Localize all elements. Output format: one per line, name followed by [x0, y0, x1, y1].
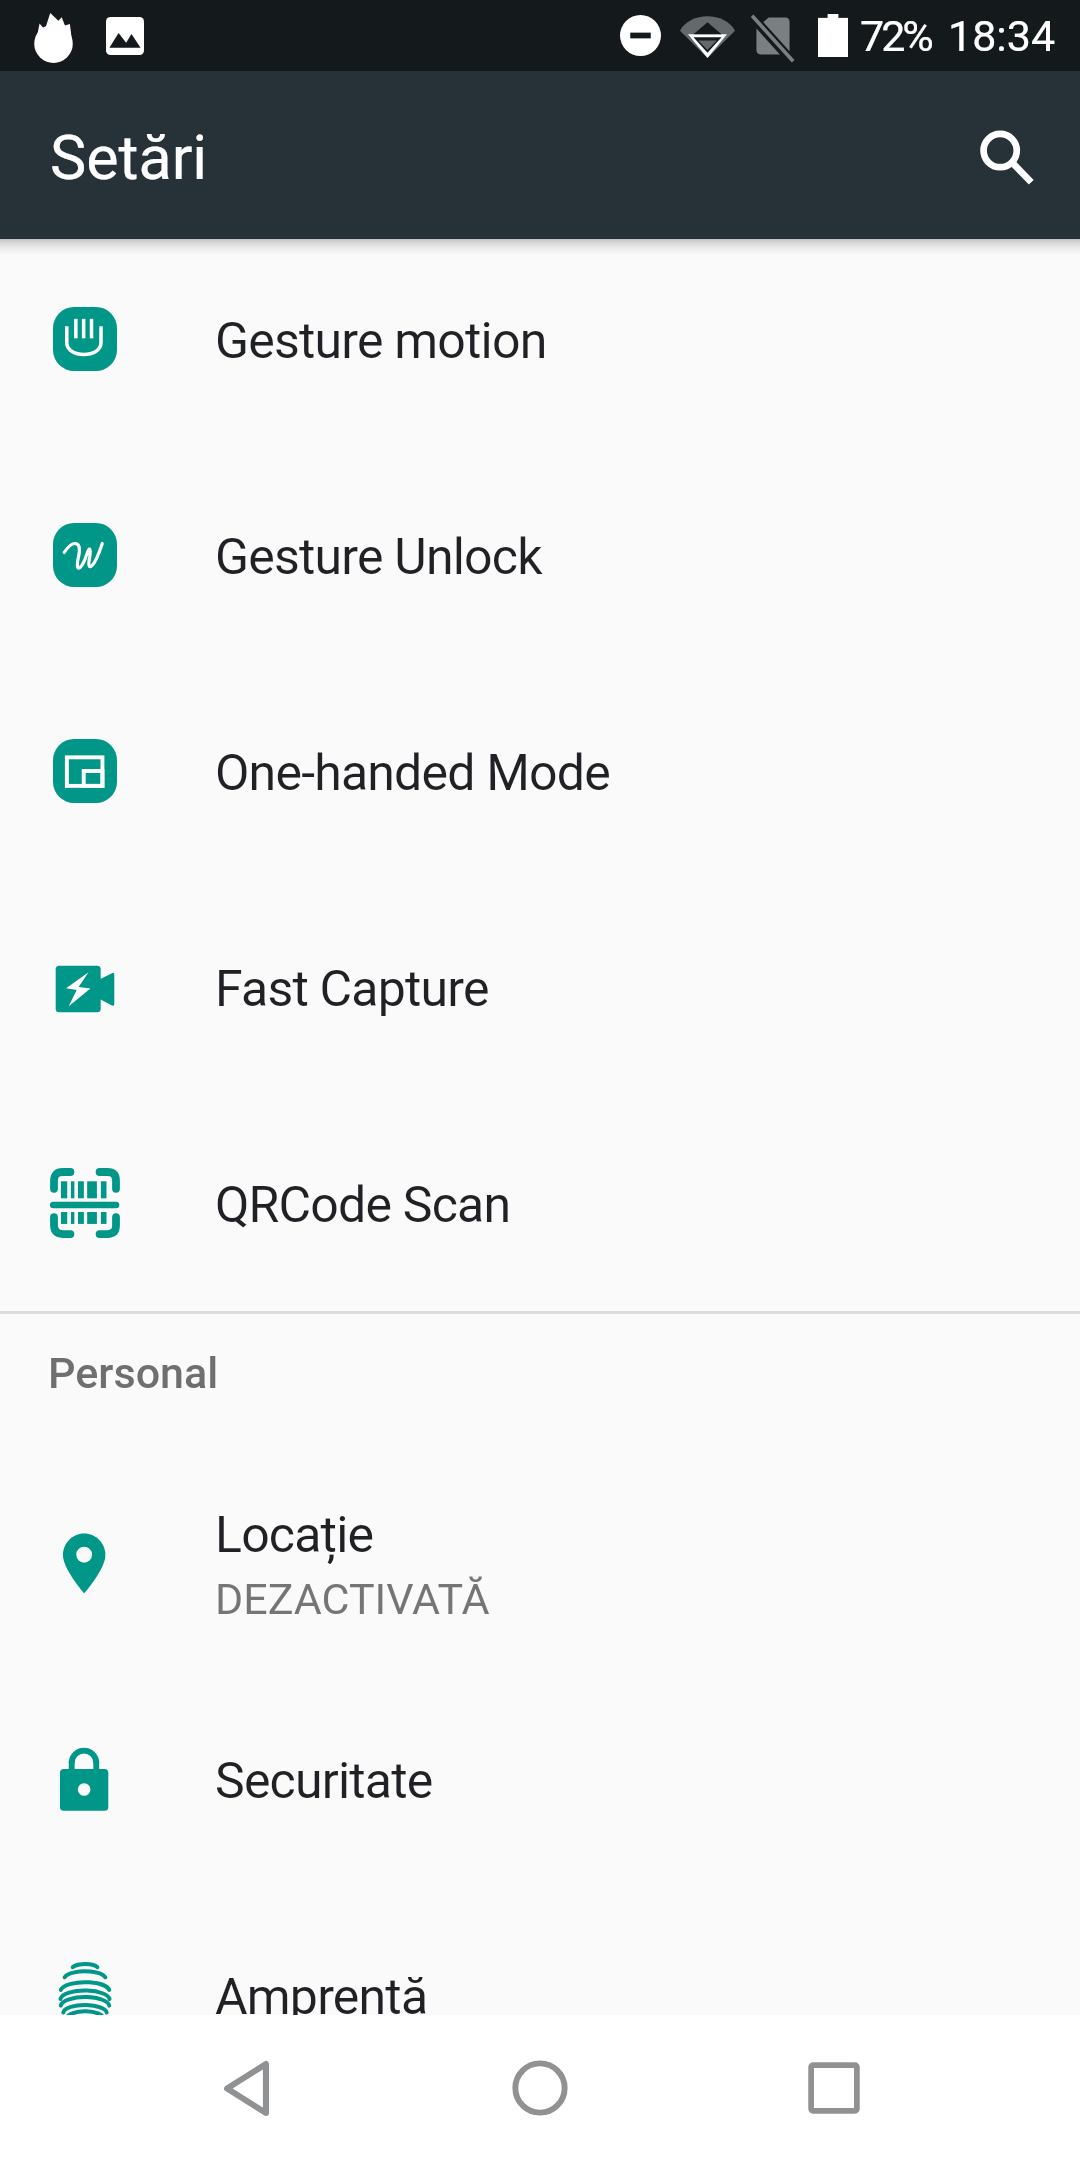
staticText: Personal — [48, 1348, 219, 1398]
button[interactable]: Back — [186, 2028, 306, 2148]
staticText: DEZACTIVATĂ — [215, 1574, 490, 1624]
button[interactable]: Locație — [0, 1455, 1080, 1671]
button[interactable]: QRCode Scan — [0, 1095, 1080, 1311]
staticText: One-handed Mode — [215, 744, 610, 803]
staticText: QRCode Scan — [215, 1176, 511, 1235]
button[interactable]: One-handed Mode — [0, 663, 1080, 879]
staticText: Gesture motion — [215, 312, 547, 371]
button[interactable]: Fast Capture — [0, 879, 1080, 1095]
staticText: 72% — [860, 11, 931, 61]
button[interactable]: Home — [480, 2028, 600, 2148]
button[interactable]: Amprentă — [0, 1887, 1080, 2103]
staticText: Setări — [50, 122, 208, 193]
staticText: 18:34 — [948, 11, 1056, 61]
button[interactable]: Gesture Unlock — [0, 447, 1080, 663]
staticText: Fast Capture — [215, 960, 489, 1019]
button[interactable]: Search — [934, 83, 1078, 227]
staticText: Amprentă — [215, 1968, 428, 2027]
staticText: Locație — [215, 1506, 374, 1565]
button[interactable]: Recents — [774, 2028, 894, 2148]
staticText: Gesture Unlock — [215, 528, 542, 587]
staticText: Securitate — [215, 1752, 433, 1811]
button[interactable]: Gesture motion — [0, 231, 1080, 447]
button[interactable]: Securitate — [0, 1671, 1080, 1887]
